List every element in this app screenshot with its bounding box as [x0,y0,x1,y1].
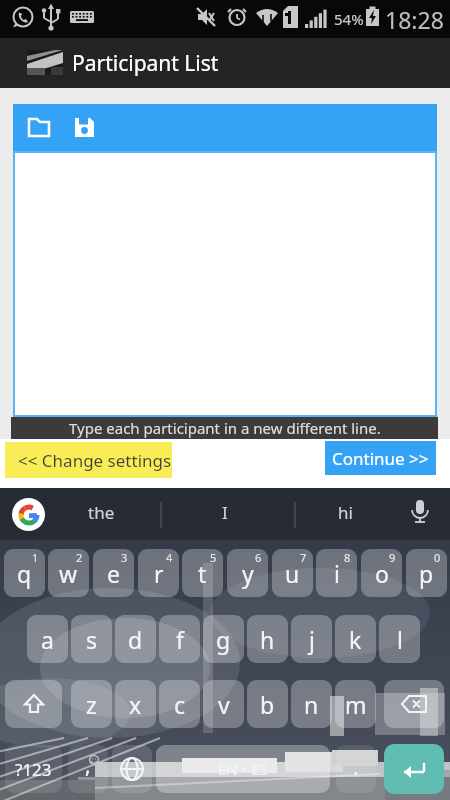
staticText: m [345,689,367,720]
staticText: 7 [300,550,307,565]
staticText: 8 [344,550,351,565]
button[interactable] [384,680,444,728]
button[interactable]: c [159,680,200,728]
button[interactable] [28,116,52,140]
button[interactable]: z [71,680,112,728]
button[interactable]: q [4,549,45,597]
staticText: Type each participant in a new different… [69,418,381,438]
button[interactable]: v [203,680,244,728]
button[interactable]: n [291,680,332,728]
button[interactable]: r [138,549,179,597]
staticText: y [242,558,254,589]
staticText: s [86,624,98,655]
button[interactable]: p [406,549,447,597]
button[interactable]: g [203,615,244,663]
staticText: r [154,558,164,589]
staticText: h [260,624,275,655]
button[interactable]: m [335,680,376,728]
staticText: u [285,558,300,589]
button[interactable]: y [227,549,268,597]
staticText: o [375,558,389,589]
button[interactable]: b [247,680,288,728]
button[interactable]: l [379,615,420,663]
button[interactable]: << Change settings [5,442,172,478]
button[interactable]: s [71,615,112,663]
staticText: t [198,558,207,589]
button[interactable] [12,498,45,531]
button[interactable]: h [247,615,288,663]
button[interactable]: o [361,549,402,597]
staticText: 9 [389,550,396,565]
staticText: ?123 [15,758,52,781]
staticText: , [85,751,91,780]
staticText: l [397,624,403,655]
staticText: b [260,689,275,720]
staticText: z [86,689,97,720]
button[interactable]: Continue >> [325,441,436,475]
button[interactable]: x [115,680,156,728]
staticText: w [59,558,78,589]
staticText: g [216,624,231,655]
button[interactable]: i [316,549,357,597]
staticText: q [17,558,32,589]
button[interactable] [112,745,152,793]
staticText: i [334,558,340,589]
staticText: f [176,624,184,655]
staticText: Continue >> [332,447,429,470]
staticText: hi [338,501,353,524]
staticText: 5 [210,550,217,565]
button[interactable]: u [272,549,313,597]
button[interactable]: ?123 [5,745,62,793]
button[interactable]: d [115,615,156,663]
staticText: c [174,689,186,720]
button[interactable]: e [93,549,134,597]
button[interactable]: . [336,745,376,793]
staticText: 6 [255,550,262,565]
staticText: EN • ES [218,759,268,779]
staticText: k [349,624,362,655]
staticText: a [41,624,54,655]
button[interactable]: a [27,615,68,663]
button[interactable]: EN • ES [156,745,330,793]
button[interactable] [384,744,444,794]
staticText: 2 [76,550,83,565]
button[interactable] [73,116,97,140]
button[interactable]: w [48,549,89,597]
button[interactable]: t [182,549,223,597]
staticText: 4 [166,550,173,565]
button[interactable]: j [291,615,332,663]
button[interactable]: k [335,615,376,663]
staticText: d [128,624,143,655]
staticText: 18:28 [385,4,444,35]
staticText: 1 [32,550,39,565]
staticText: n [304,689,319,720]
staticText: 3 [121,550,128,565]
staticText: e [107,558,120,589]
staticText: x [129,689,142,720]
staticText: 54% [334,9,364,29]
staticText: Participant List [72,49,219,78]
staticText: 0 [434,550,441,565]
button[interactable] [5,680,62,728]
staticText: I [222,501,228,524]
button[interactable]: f [159,615,200,663]
staticText: p [419,558,434,589]
staticText: v [218,689,230,720]
button[interactable]: , [68,745,108,793]
staticText: j [309,624,315,655]
staticText: the [88,501,115,524]
staticText: . [353,753,359,782]
staticText: << Change settings [18,449,172,472]
